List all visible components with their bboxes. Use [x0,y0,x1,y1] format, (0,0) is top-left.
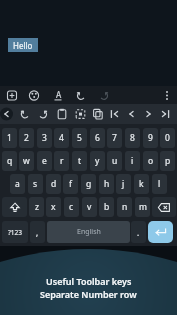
button[interactable]: . [131,221,146,243]
staticText: c [69,201,74,213]
button[interactable]: 9 [143,128,158,148]
button[interactable]: 3 [37,128,52,148]
staticText: e [42,155,47,167]
staticText: 5 [77,132,82,144]
staticText: d [51,178,57,190]
button[interactable]: b [99,197,114,217]
button[interactable]: n [117,197,132,217]
button[interactable]: s [28,174,43,194]
staticText: v [87,201,92,213]
staticText: q [7,155,13,167]
staticText: 0 [165,132,170,144]
staticText: l [158,178,161,190]
button[interactable]: v [82,197,97,217]
button[interactable]: f [63,174,78,194]
button[interactable]: g [81,174,96,194]
button[interactable] [2,197,27,217]
button[interactable]: o [143,151,158,171]
staticText: p [165,155,171,167]
button[interactable]: c [64,197,79,217]
button[interactable] [0,105,177,124]
button[interactable]: u [107,151,122,171]
staticText: Hello [13,40,33,51]
button[interactable]: 0 [160,128,175,148]
staticText: 2 [24,132,29,144]
staticText: 8 [130,132,135,144]
button[interactable] [148,221,173,243]
staticText: 6 [95,132,100,144]
staticText: English [77,227,101,237]
button[interactable]: 8 [125,128,140,148]
button[interactable]: k [134,174,149,194]
staticText: o [148,155,154,167]
button[interactable]: 7 [107,128,122,148]
staticText: n [122,201,128,213]
button[interactable]: d [46,174,61,194]
staticText: a [15,178,20,190]
staticText: Separate Number row [40,288,137,300]
button[interactable]: w [19,151,34,171]
button[interactable]: m [135,197,150,217]
staticText: g [86,178,92,190]
staticText: 9 [148,132,153,144]
button[interactable]: z [29,197,44,217]
button[interactable] [0,86,177,105]
button[interactable]: , [30,221,45,243]
button[interactable]: q [2,151,17,171]
button[interactable]: Hello [8,38,38,52]
staticText: 3 [42,132,47,144]
button[interactable]: y [90,151,105,171]
button[interactable]: l [152,174,167,194]
button[interactable]: ?123 [2,221,28,243]
staticText: Useful Toolbar keys [46,275,132,287]
staticText: k [139,178,144,190]
staticText: . [137,227,140,238]
button[interactable]: 5 [72,128,87,148]
button[interactable]: e [37,151,52,171]
button[interactable]: j [116,174,131,194]
button[interactable]: 6 [90,128,105,148]
staticText: A [56,89,62,100]
staticText: ?123 [8,228,22,237]
button[interactable]: a [10,174,25,194]
staticText: m [139,201,147,213]
staticText: i [131,155,134,167]
staticText: w [23,155,30,167]
button[interactable]: p [160,151,175,171]
button[interactable]: x [46,197,61,217]
staticText: 4 [59,132,64,144]
button[interactable]: 1 [2,128,17,148]
button[interactable]: r [54,151,69,171]
staticText: h [104,178,110,190]
button[interactable]: English [47,221,130,243]
staticText: j [122,178,125,190]
staticText: s [33,178,38,190]
staticText: z [35,201,39,213]
button[interactable]: i [125,151,140,171]
button[interactable]: 2 [19,128,34,148]
staticText: y [95,155,100,167]
staticText: 1 [7,132,12,144]
staticText: u [112,155,118,167]
staticText: , [36,227,39,238]
staticText: r [60,155,64,167]
button[interactable]: t [72,151,87,171]
staticText: 7 [112,132,117,144]
staticText: b [104,201,110,213]
staticText: f [69,178,72,190]
button[interactable]: h [99,174,114,194]
button[interactable] [152,197,176,217]
staticText: x [51,201,56,213]
staticText: t [78,155,82,167]
button[interactable]: 4 [54,128,69,148]
